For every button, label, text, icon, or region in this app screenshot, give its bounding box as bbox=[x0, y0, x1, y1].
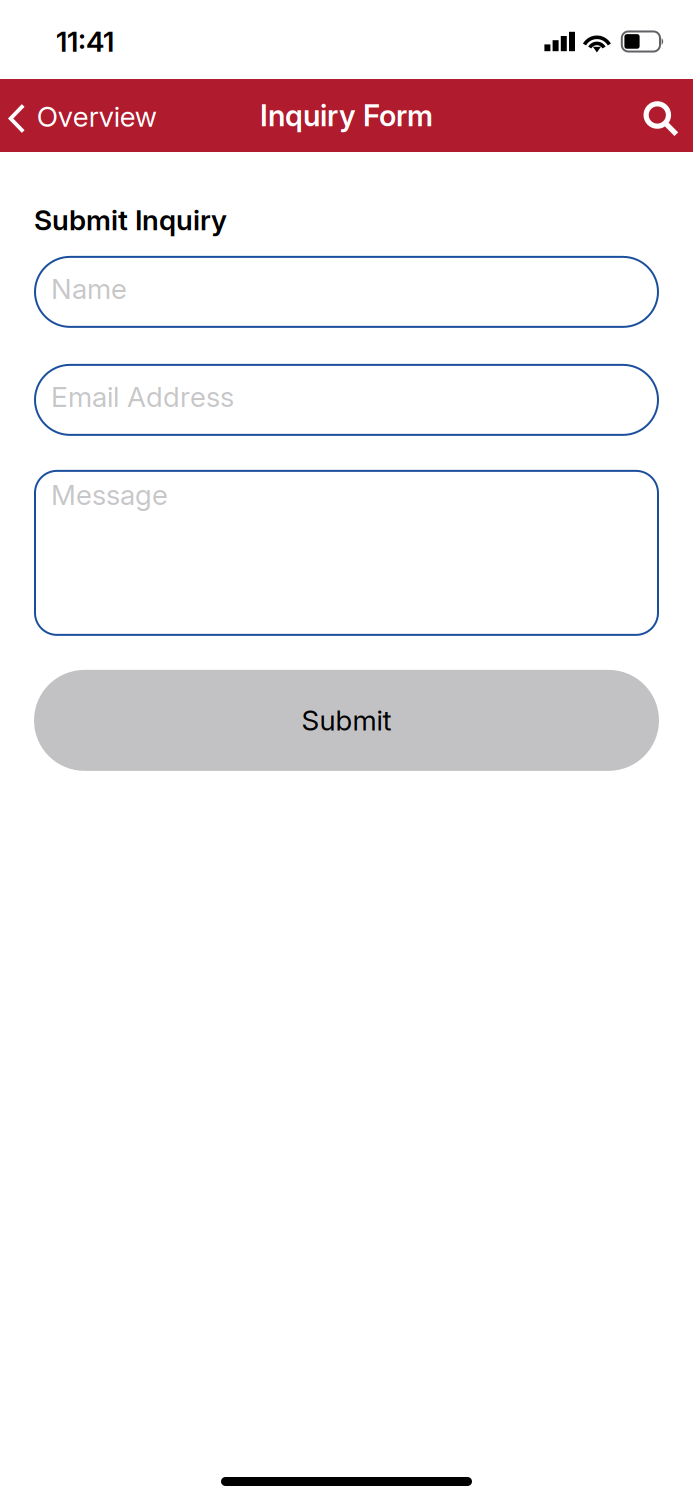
staticText: 11:41 bbox=[56, 25, 114, 58]
button[interactable]: Name bbox=[34, 256, 659, 328]
staticText: Inquiry Form bbox=[260, 98, 433, 133]
staticText: Message bbox=[51, 478, 168, 512]
button[interactable]: Overview bbox=[0, 86, 169, 144]
button[interactable]: Email Address bbox=[34, 364, 659, 436]
button[interactable]: Search bbox=[625, 84, 693, 147]
staticText: Submit Inquiry bbox=[34, 203, 227, 237]
button[interactable]: Submit bbox=[34, 670, 659, 771]
staticText: Overview bbox=[37, 100, 157, 133]
staticText: Email Address bbox=[51, 380, 234, 414]
button[interactable]: Message bbox=[34, 470, 659, 636]
staticText: Submit bbox=[301, 703, 391, 737]
staticText: Name bbox=[51, 272, 127, 306]
